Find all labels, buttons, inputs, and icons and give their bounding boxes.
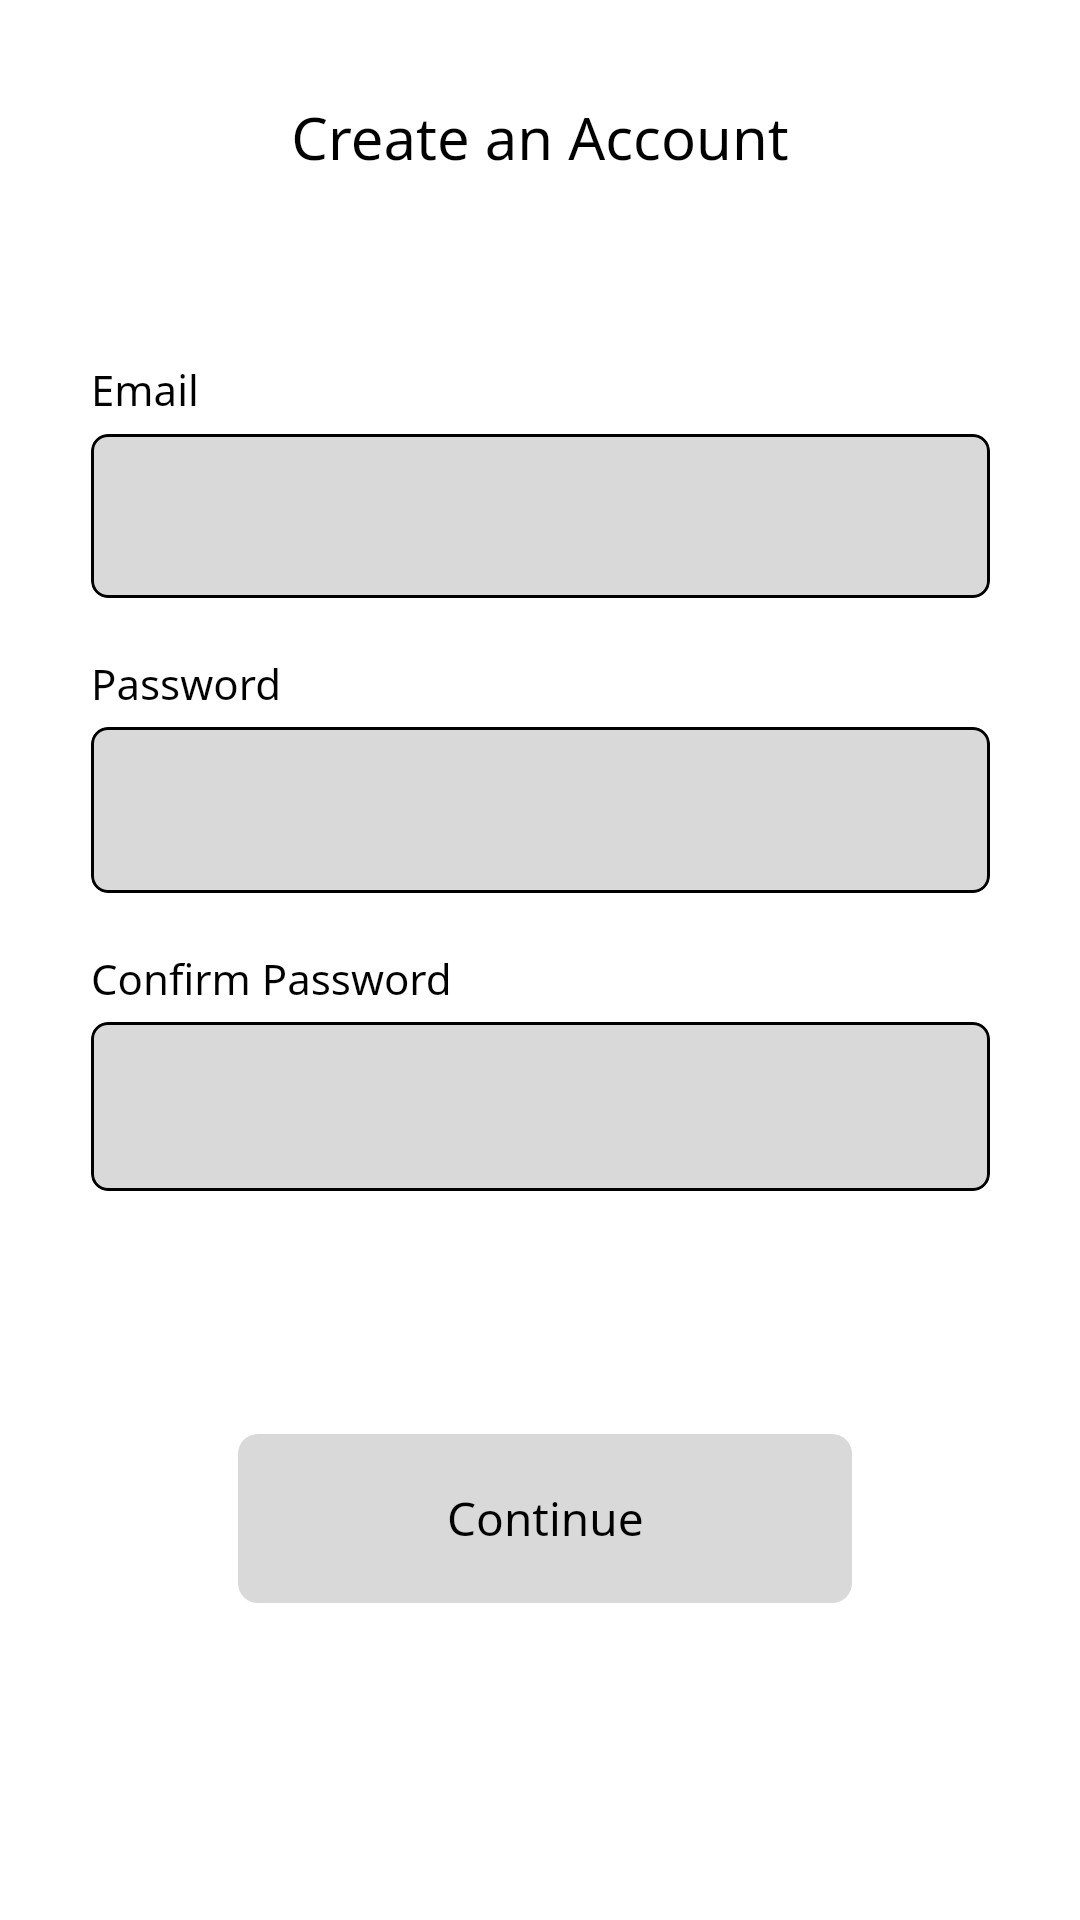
staticText: Confirm Password: [91, 950, 452, 1007]
button[interactable]: [91, 727, 990, 893]
staticText: Email: [91, 361, 199, 418]
staticText: Create an Account: [0, 98, 1080, 177]
button[interactable]: [91, 1022, 990, 1191]
button[interactable]: Continue: [238, 1434, 852, 1603]
staticText: Continue: [447, 1487, 644, 1550]
button[interactable]: [91, 434, 990, 598]
staticText: Password: [91, 655, 281, 712]
